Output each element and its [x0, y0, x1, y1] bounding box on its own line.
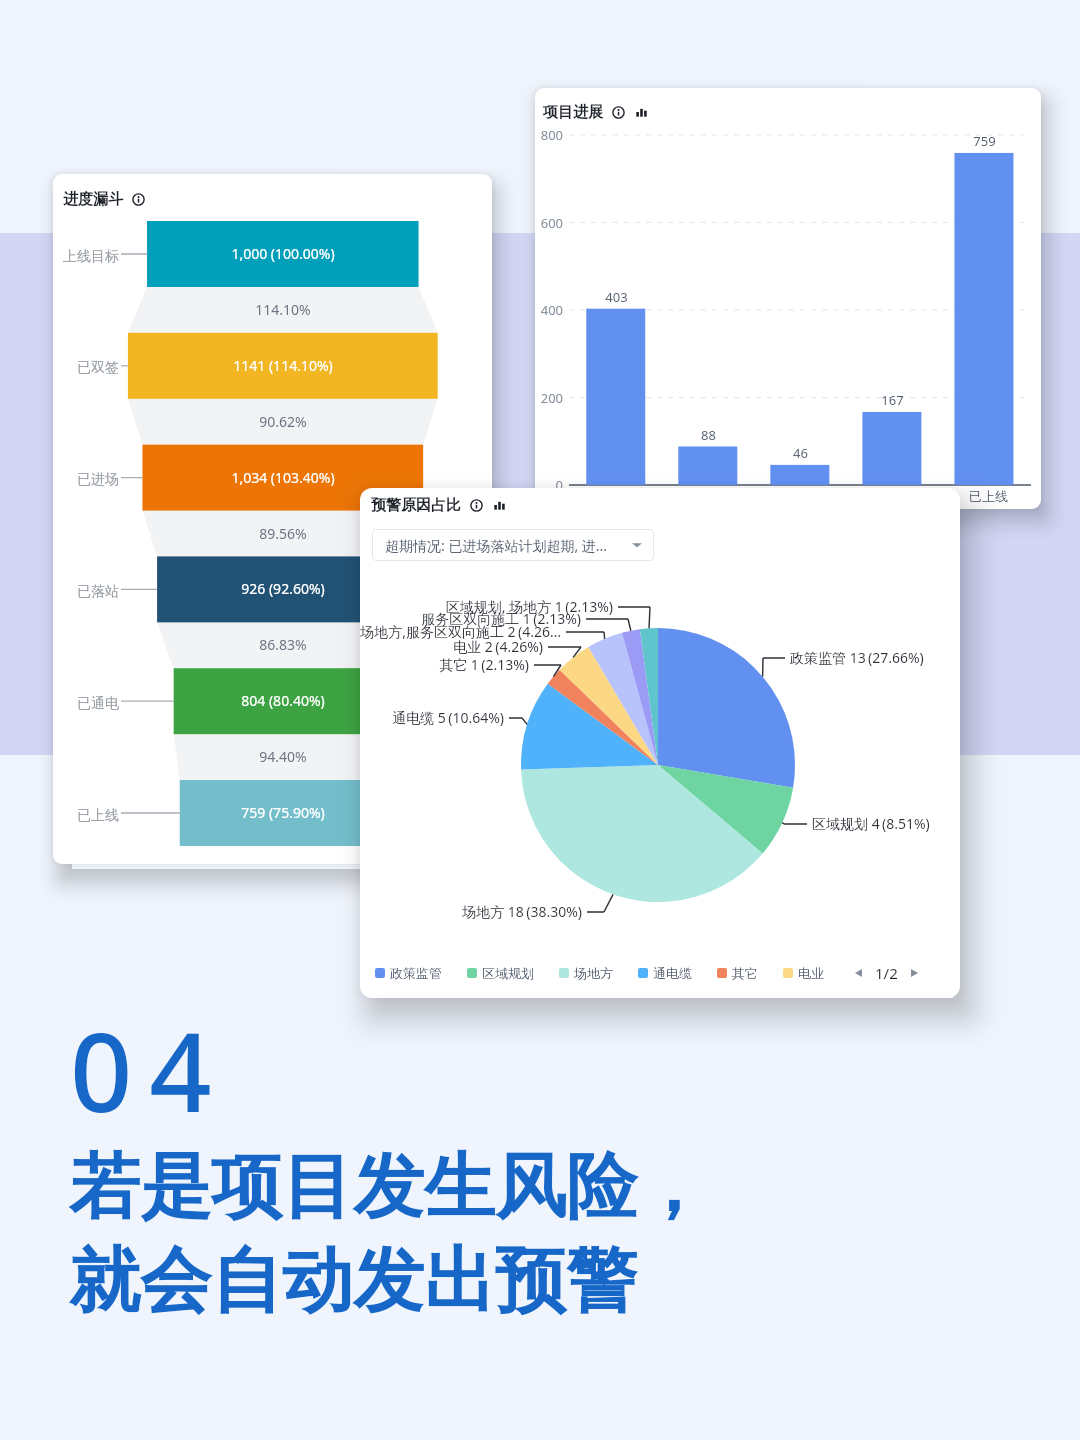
staticText: 政策监管 13 (27.66%) [790, 648, 924, 667]
staticText: 其它 1 (2.13%) [439, 655, 529, 674]
staticText: 759 (75.90%) [241, 803, 325, 822]
staticText: 电业 2 (4.26%) [453, 637, 543, 656]
button[interactable]: 场地方 [559, 965, 613, 981]
staticText: 86.83% [259, 635, 307, 654]
staticText: 1,034 (103.40%) [231, 468, 335, 487]
staticText: 超期情况: 已进场落站计划超期, 进... [385, 536, 608, 555]
staticText: 114.10% [255, 300, 311, 319]
staticText: 已双签 [77, 359, 119, 377]
staticText: 04 [70, 995, 229, 1143]
staticText: 已上线 [77, 807, 119, 825]
staticText: 1,000 (100.00%) [231, 244, 335, 263]
staticText: 通电缆 [653, 965, 692, 981]
button[interactable]: 超期情况: 已进场落站计划超期, 进... [372, 529, 654, 561]
button[interactable]: 区域规划 [467, 965, 534, 981]
staticText: 1/2 [875, 963, 898, 983]
button[interactable]: 政策监管 [375, 965, 442, 981]
button[interactable]: 预警原因占比 [360, 488, 960, 998]
staticText: 电业 [798, 965, 824, 981]
button[interactable]: Info [470, 499, 483, 512]
staticText: 600 [540, 214, 563, 232]
staticText: 若是项目发生风险， [69, 1143, 708, 1232]
staticText: 服务区双向施工 1 (2.13%) [421, 609, 581, 628]
button[interactable]: Info [132, 193, 145, 206]
staticText: 1141 (114.10%) [233, 356, 333, 375]
staticText: 政策监管 [390, 965, 442, 981]
staticText: 区域规划 [482, 965, 534, 981]
staticText: 场地方 [574, 965, 613, 981]
staticText: 预警原因占比 [371, 496, 461, 515]
staticText: 场地方,服务区双向施工 2 (4.26… [360, 622, 561, 641]
staticText: 89.56% [259, 524, 307, 543]
staticText: 403 [605, 288, 628, 306]
button[interactable]: Previous [849, 963, 869, 983]
button[interactable]: 项目进展 [535, 88, 1041, 509]
staticText: 0 [555, 476, 563, 494]
staticText: 已上线 [969, 488, 1008, 504]
button[interactable]: 进度漏斗 [53, 174, 492, 864]
staticText: 项目进展 [543, 103, 603, 122]
button[interactable]: Next [904, 963, 924, 983]
button[interactable]: Chart type [493, 499, 506, 512]
button[interactable]: 其它 [717, 965, 758, 981]
button[interactable]: 通电缆 [638, 965, 692, 981]
staticText: 804 (80.40%) [241, 691, 325, 710]
staticText: 区域规划 4 (8.51%) [812, 814, 930, 833]
staticText: 759 [973, 132, 996, 150]
staticText: 其它 [732, 965, 758, 981]
staticText: 上线目标 [63, 248, 119, 266]
button[interactable]: Chart type [635, 106, 648, 119]
staticText: 46 [793, 444, 808, 462]
staticText: 200 [540, 389, 563, 407]
staticText: 400 [540, 301, 563, 319]
staticText: 90.62% [259, 412, 307, 431]
staticText: 区域规划, 场地方 1 (2.13%) [445, 597, 613, 616]
button[interactable]: Info [612, 106, 625, 119]
staticText: 场地方 18 (38.30%) [462, 902, 582, 921]
staticText: 已通电 [77, 695, 119, 713]
staticText: 800 [540, 126, 563, 144]
staticText: 94.40% [259, 747, 307, 766]
staticText: 88 [701, 426, 716, 444]
staticText: 通电缆 5 (10.64%) [392, 708, 504, 727]
staticText: 就会自动发出预警 [69, 1237, 637, 1326]
staticText: 已落站 [77, 583, 119, 601]
staticText: 167 [881, 391, 904, 409]
staticText: 进度漏斗 [63, 190, 123, 209]
button[interactable]: 电业 [783, 965, 824, 981]
staticText: 已进场 [77, 471, 119, 489]
staticText: 926 (92.60%) [241, 579, 325, 598]
